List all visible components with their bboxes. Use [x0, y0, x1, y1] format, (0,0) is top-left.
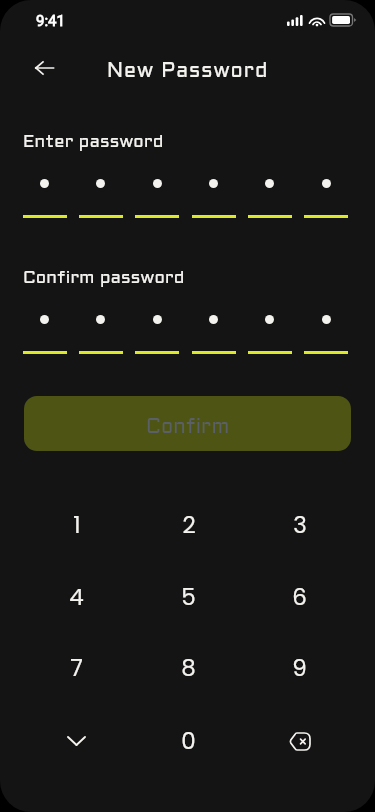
staticText: 5 [181, 581, 196, 613]
staticText: Enter password [23, 135, 164, 151]
staticText: 0 [181, 725, 196, 757]
staticText: 4 [69, 581, 84, 613]
button[interactable]: 7 [21, 632, 132, 704]
button[interactable]: Hide keypad [21, 705, 132, 777]
staticText: 9 [292, 652, 307, 684]
staticText: New Password [107, 63, 269, 82]
button[interactable]: 4 [21, 561, 132, 633]
staticText: 7 [70, 652, 83, 684]
button[interactable]: Confirm [24, 396, 351, 451]
staticText: 9:41 [36, 12, 65, 30]
button[interactable]: 9 [244, 632, 355, 704]
button[interactable]: 8 [133, 632, 244, 704]
staticText: 6 [292, 581, 307, 613]
button[interactable]: 6 [244, 561, 355, 633]
staticText: 1 [73, 509, 81, 541]
staticText: 2 [182, 509, 196, 541]
staticText: Confirm [146, 419, 230, 438]
button[interactable]: 5 [133, 561, 244, 633]
button[interactable]: 0 [133, 705, 244, 777]
button[interactable]: 2 [133, 489, 244, 561]
button[interactable]: Back [24, 48, 64, 88]
button[interactable]: 3 [244, 489, 355, 561]
button[interactable]: Backspace [244, 705, 355, 777]
staticText: 8 [181, 652, 196, 684]
staticText: 3 [293, 509, 307, 541]
button[interactable]: 1 [21, 489, 132, 561]
staticText: Confirm password [23, 271, 185, 287]
